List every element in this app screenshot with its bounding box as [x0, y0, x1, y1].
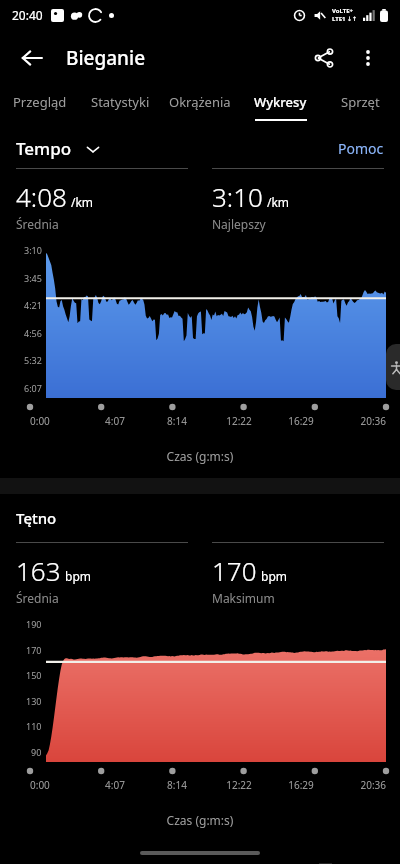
staticText: 4:56 — [24, 327, 42, 339]
staticText: 190 — [26, 618, 42, 630]
staticText: Bieganie — [66, 45, 146, 71]
staticText: Tętno — [16, 508, 57, 528]
button[interactable]: Ułatwienia dostępu — [386, 344, 400, 390]
staticText: 170 — [212, 553, 257, 588]
staticText: 5:32 — [24, 354, 42, 366]
staticText: bpm — [261, 568, 287, 584]
button[interactable]: Wstecz — [10, 36, 54, 80]
staticText: 12:22 — [216, 778, 262, 792]
staticText: 170 — [26, 644, 42, 656]
staticText: Najlepszy — [212, 216, 266, 232]
staticText: VoLTE+ — [332, 7, 354, 15]
staticText: 20:36 — [340, 778, 386, 792]
button[interactable]: Przegląd — [0, 86, 80, 128]
staticText: Tempo — [16, 137, 72, 160]
staticText: 12:22 — [216, 414, 262, 428]
button[interactable]: Wykresy — [240, 86, 320, 128]
staticText: Średnia — [16, 216, 59, 232]
staticText: bpm — [65, 568, 91, 584]
staticText: /km — [267, 194, 290, 210]
staticText: 8:14 — [154, 414, 200, 428]
staticText: LTE1 ↓↑ — [332, 15, 358, 23]
staticText: 0:00 — [30, 778, 76, 792]
button[interactable]: Więcej opcji — [346, 36, 390, 80]
button[interactable]: Tempo — [16, 137, 100, 160]
staticText: Czas (g:m:s) — [0, 812, 400, 828]
staticText: Sprzęt — [341, 93, 380, 111]
staticText: Przegląd — [13, 93, 67, 111]
staticText: 4:07 — [92, 778, 138, 792]
staticText: 20:36 — [340, 414, 386, 428]
staticText: Statystyki — [91, 93, 150, 111]
staticText: 6:07 — [24, 382, 42, 394]
staticText: 163 — [16, 553, 61, 588]
staticText: Pomoc — [338, 139, 384, 158]
staticText: 110 — [26, 720, 42, 732]
staticText: 3:10 — [24, 244, 42, 256]
staticText: 150 — [26, 669, 42, 681]
staticText: 0:00 — [30, 414, 76, 428]
button[interactable]: Udostępnij — [302, 36, 346, 80]
staticText: 130 — [26, 695, 42, 707]
staticText: 3:10 — [212, 179, 263, 214]
staticText: Czas (g:m:s) — [0, 448, 400, 464]
staticText: 3:45 — [24, 272, 42, 284]
staticText: 20:40 — [12, 7, 43, 23]
staticText: 4:08 — [16, 179, 67, 214]
button[interactable]: Pomoc — [338, 139, 384, 158]
staticText: 16:29 — [278, 778, 324, 792]
button[interactable]: Sprzęt — [320, 86, 400, 128]
staticText: Okrążenia — [169, 93, 231, 111]
staticText: Wykresy — [254, 93, 307, 111]
staticText: 16:29 — [278, 414, 324, 428]
staticText: 8:14 — [154, 778, 200, 792]
staticText: 90 — [31, 746, 42, 758]
button[interactable]: Okrążenia — [160, 86, 240, 128]
staticText: Maksimum — [212, 590, 275, 606]
staticText: 4:07 — [92, 414, 138, 428]
staticText: 4:21 — [24, 299, 42, 311]
staticText: Średnia — [16, 590, 59, 606]
button[interactable]: Statystyki — [80, 86, 160, 128]
staticText: /km — [71, 194, 94, 210]
